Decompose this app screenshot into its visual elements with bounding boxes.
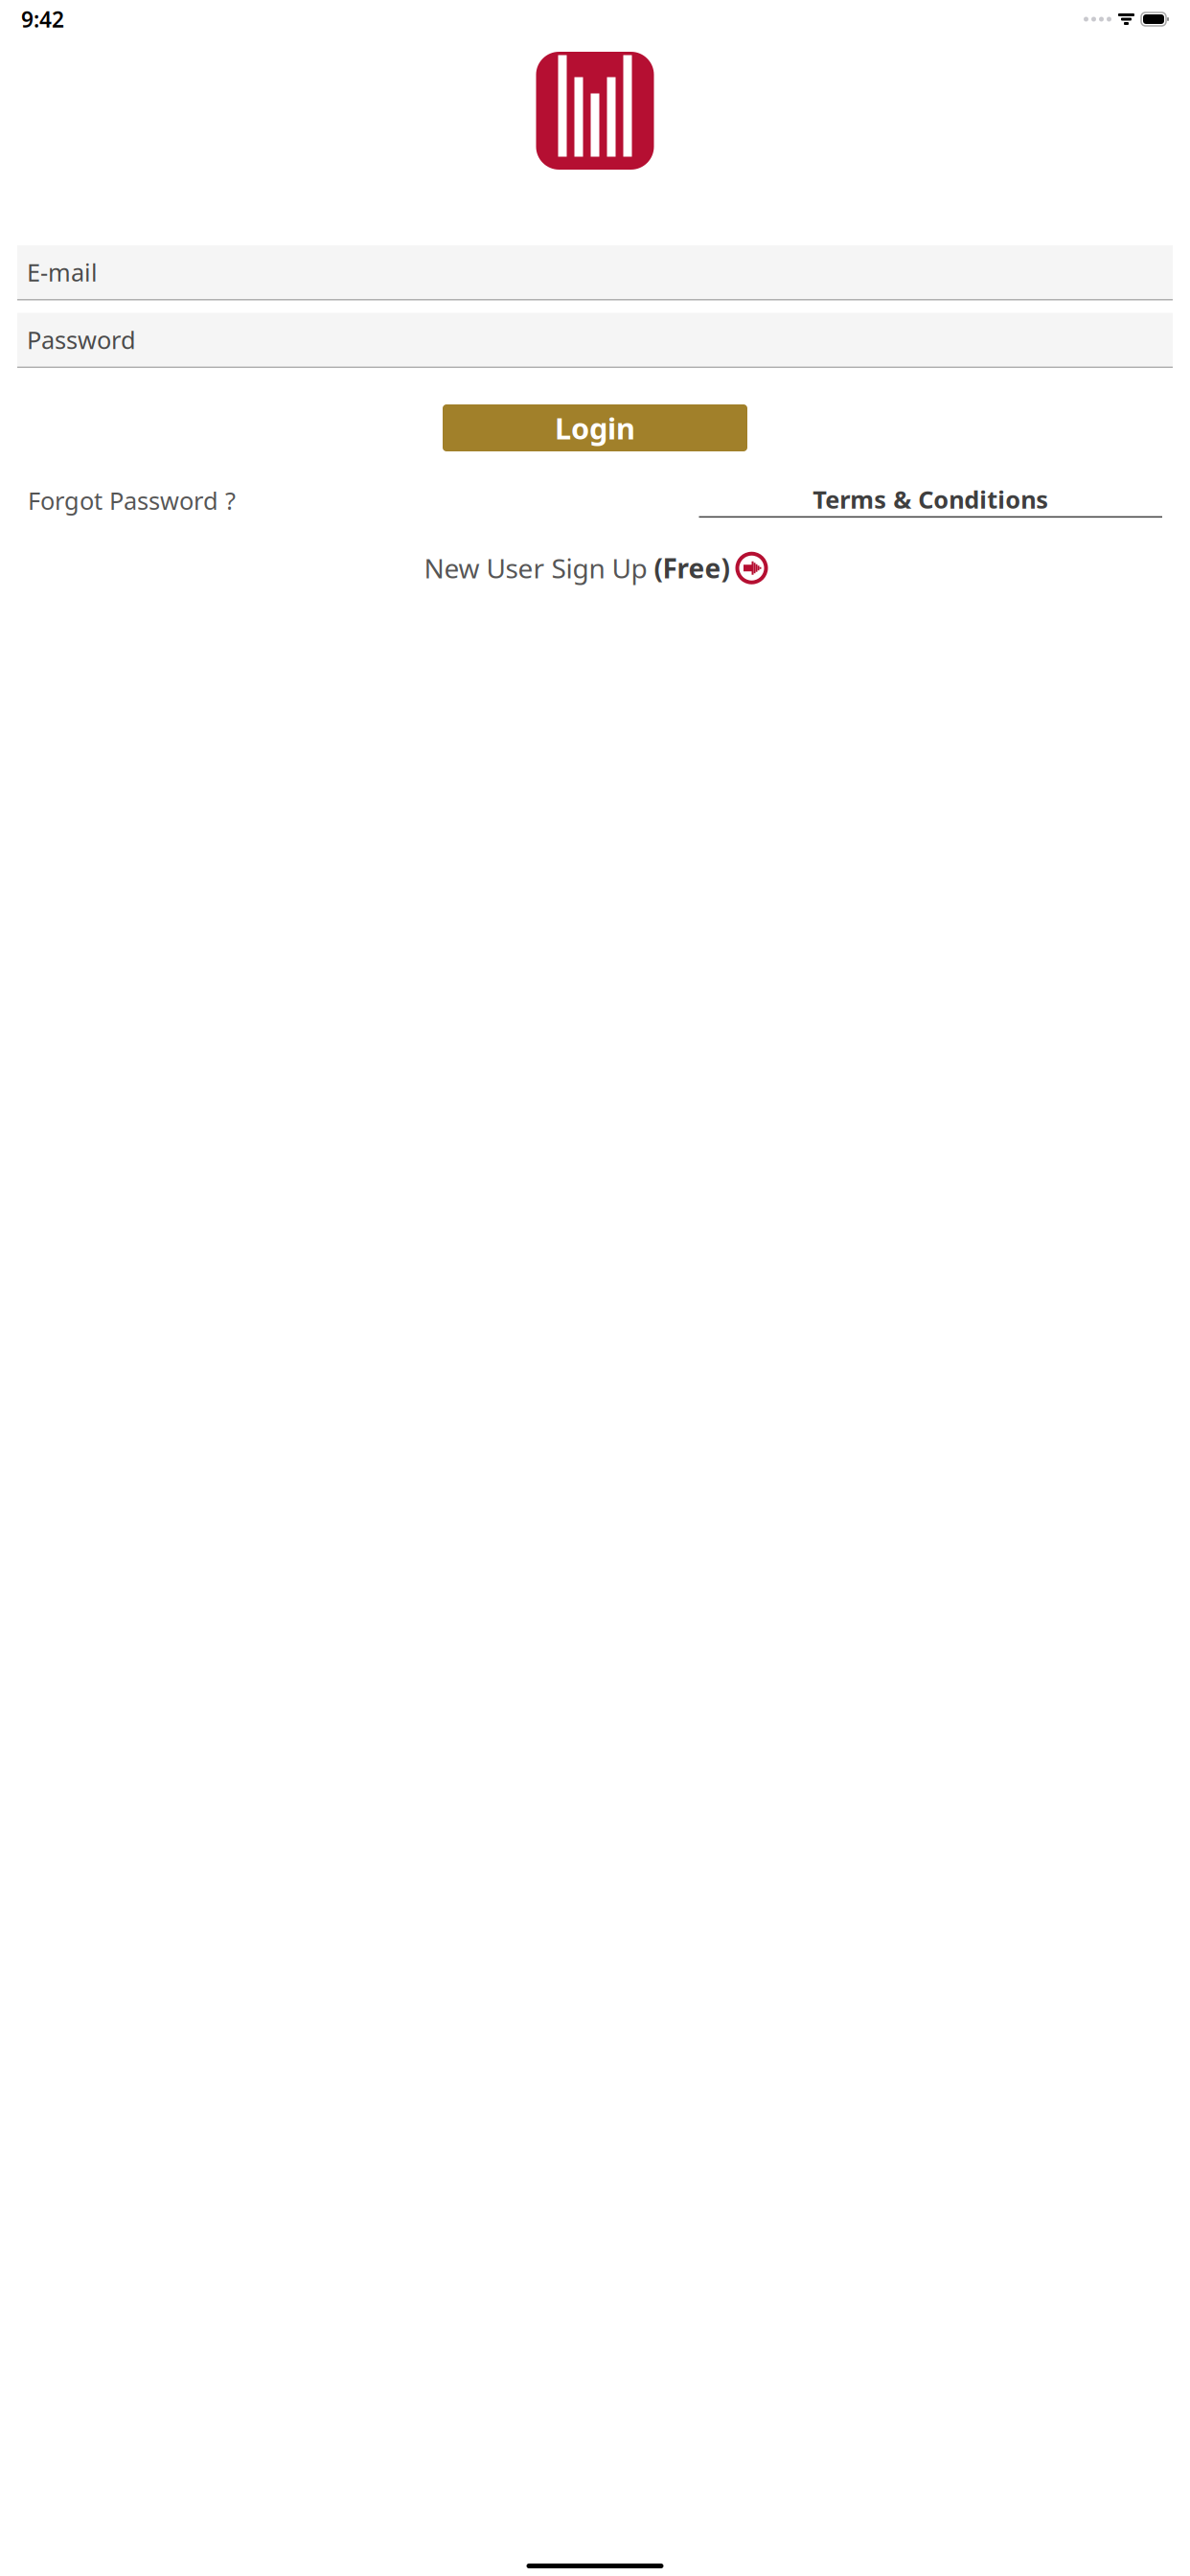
- staticText: Forgot Password ?: [28, 484, 236, 516]
- staticText: 9:42: [21, 5, 64, 34]
- button[interactable]: Forgot Password ?: [28, 484, 236, 516]
- staticText: New User Sign Up: [424, 550, 654, 586]
- staticText: Login: [555, 408, 635, 447]
- staticText: Terms & Conditions: [813, 483, 1048, 515]
- staticText: Password: [27, 324, 136, 356]
- staticText: E-mail: [27, 256, 98, 288]
- button[interactable]: Terms & Conditions: [699, 483, 1162, 518]
- button[interactable]: New User Sign Up: [424, 550, 766, 586]
- staticText: (Free): [654, 550, 730, 586]
- button[interactable]: Login: [443, 404, 747, 451]
